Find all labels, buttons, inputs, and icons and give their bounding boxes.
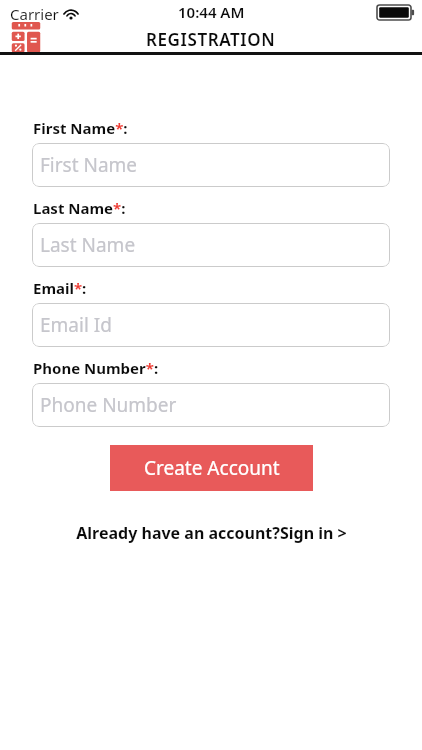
button[interactable]: Tax calculator logo bbox=[10, 22, 42, 54]
staticText: 10:44 AM bbox=[178, 2, 245, 22]
staticText: Phone Number*: bbox=[33, 358, 159, 376]
button[interactable]: Create Account bbox=[110, 445, 313, 491]
staticText: Email*: bbox=[33, 278, 87, 296]
staticText: REGISTRATION bbox=[146, 28, 276, 50]
staticText: Already have an account?Sign in > bbox=[76, 522, 347, 544]
staticText: Phone Number bbox=[40, 392, 177, 418]
staticText: Last Name bbox=[40, 232, 136, 258]
staticText: Email Id bbox=[40, 312, 112, 338]
button[interactable]: Email Id bbox=[32, 303, 390, 347]
button[interactable]: Phone Number bbox=[32, 383, 390, 427]
button[interactable]: Already have an account?Sign in > bbox=[0, 520, 422, 546]
staticText: Carrier bbox=[10, 4, 59, 24]
staticText: First Name*: bbox=[33, 118, 128, 136]
staticText: Create Account bbox=[144, 455, 280, 481]
button[interactable]: Last Name bbox=[32, 223, 390, 267]
staticText: First Name bbox=[40, 152, 138, 178]
staticText: Last Name*: bbox=[33, 198, 126, 216]
button[interactable]: First Name bbox=[32, 143, 390, 187]
